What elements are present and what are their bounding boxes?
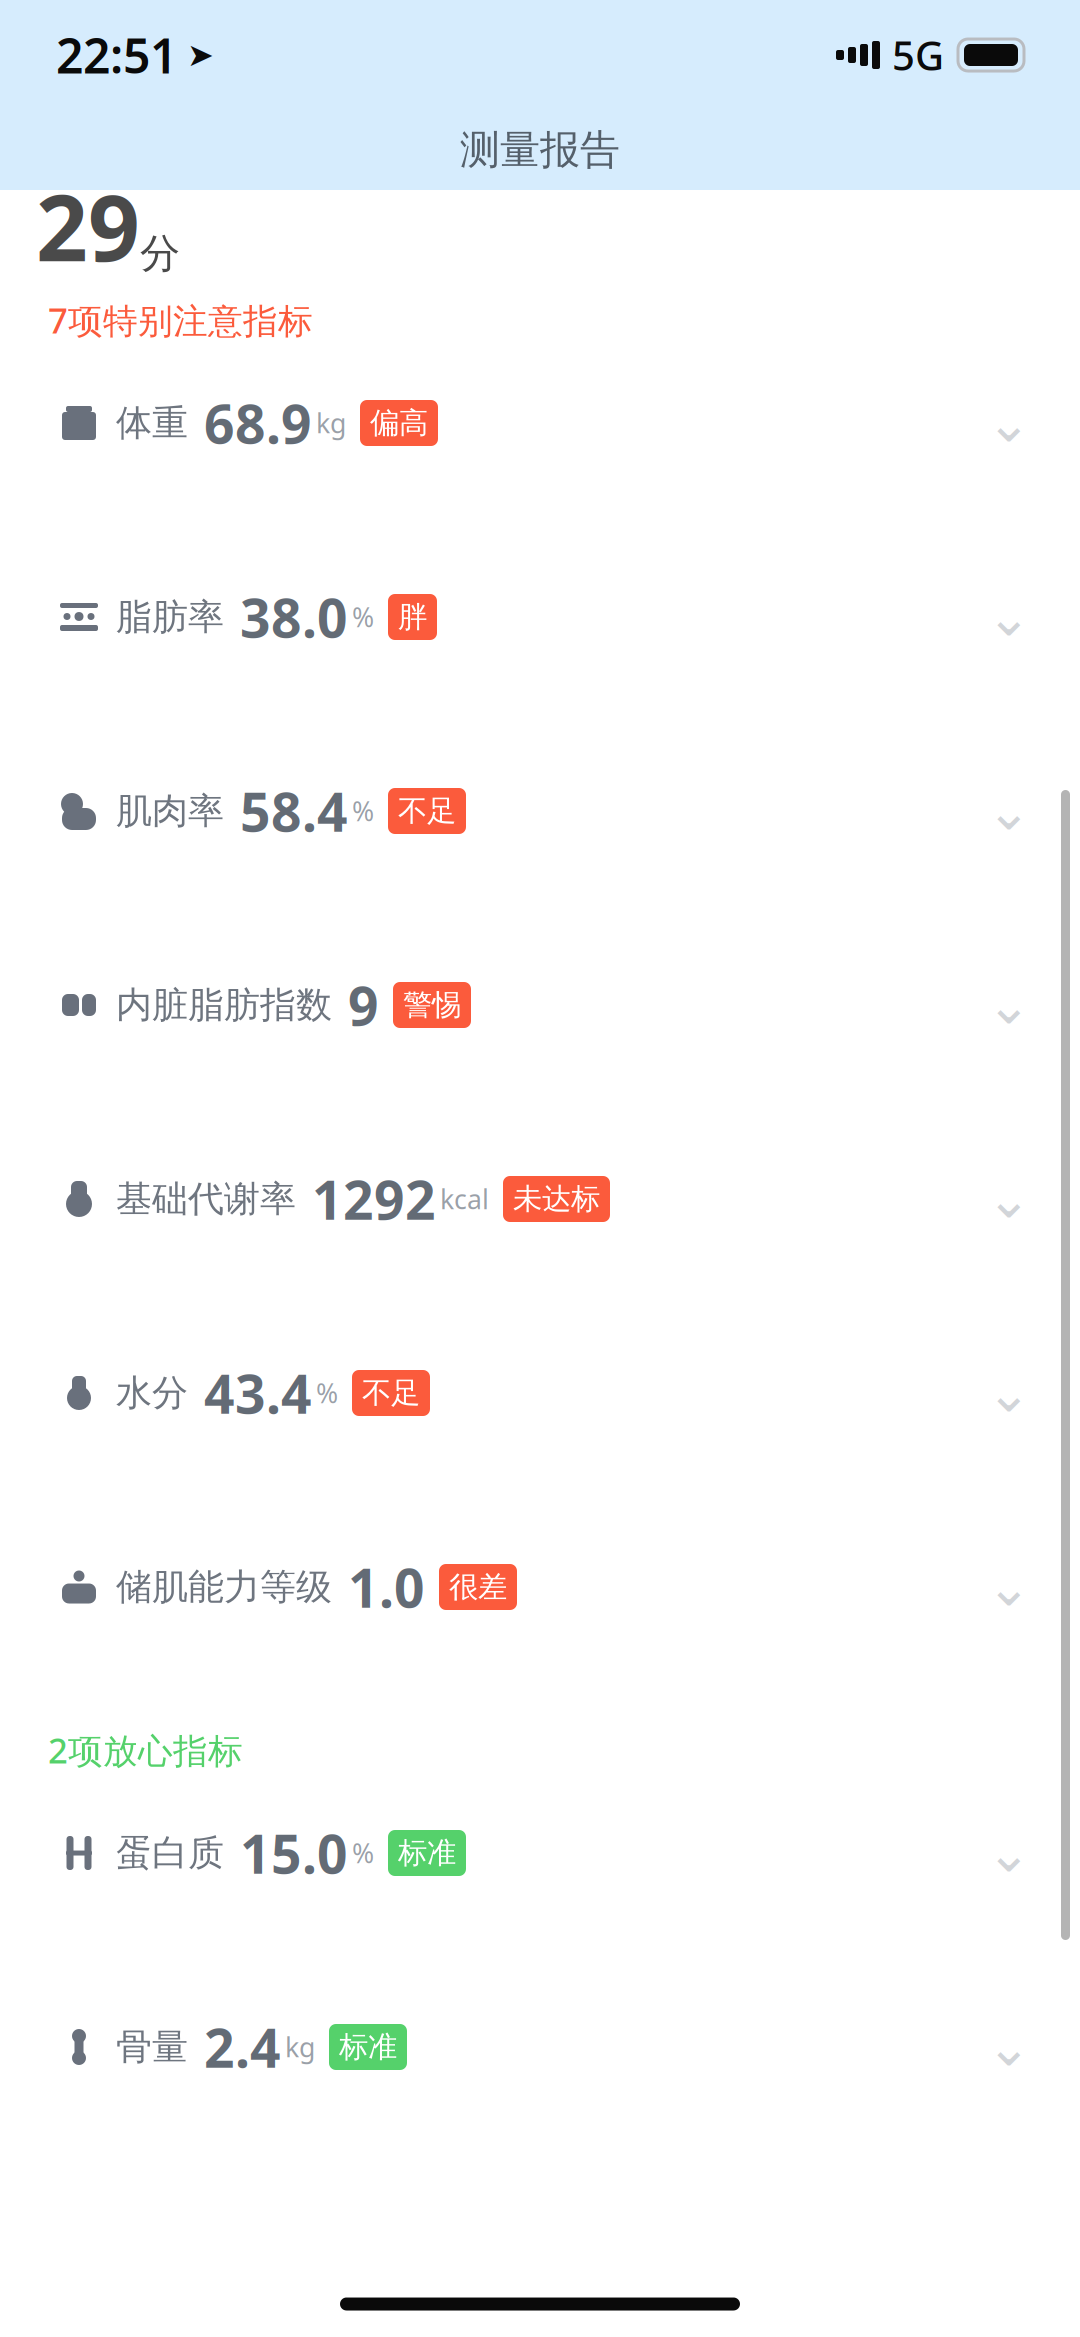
button[interactable]: 蛋白质: [0, 1798, 1080, 1908]
staticText: 很差: [449, 1569, 507, 1605]
staticText: 15.0: [240, 1818, 348, 1888]
button[interactable]: 肌肉率: [0, 756, 1080, 866]
staticText: 不足: [362, 1375, 420, 1411]
staticText: 基础代谢率: [116, 1177, 296, 1221]
staticText: 测量报告: [460, 125, 620, 174]
staticText: ⌄: [986, 1363, 1031, 1423]
button[interactable]: 内脏脂肪指数: [0, 950, 1080, 1060]
staticText: 2.4: [204, 2012, 281, 2082]
staticText: 7项特别注意指标: [48, 297, 313, 343]
staticText: 29: [36, 166, 140, 286]
staticText: ⌄: [986, 2017, 1031, 2077]
staticText: 22:51: [56, 23, 177, 87]
staticText: kg: [316, 405, 346, 441]
staticText: ⌄: [986, 975, 1031, 1035]
staticText: 38.0: [240, 582, 348, 652]
staticText: 分: [140, 229, 180, 278]
staticText: 偏高: [370, 405, 428, 441]
staticText: ⌄: [986, 1823, 1031, 1883]
staticText: 1292: [312, 1164, 436, 1234]
staticText: 43.4: [204, 1358, 312, 1428]
staticText: 2项放心指标: [48, 1727, 243, 1773]
staticText: 未达标: [513, 1181, 600, 1217]
staticText: ⌄: [986, 1557, 1031, 1617]
button[interactable]: 脂肪率: [0, 562, 1080, 672]
staticText: 体重: [116, 401, 188, 445]
staticText: 58.4: [240, 776, 348, 846]
staticText: kg: [285, 2029, 315, 2065]
staticText: 警惕: [403, 987, 461, 1023]
staticText: ➤: [187, 37, 214, 73]
staticText: %: [352, 793, 374, 829]
staticText: 水分: [116, 1371, 188, 1415]
button[interactable]: 水分: [0, 1338, 1080, 1448]
staticText: %: [352, 1835, 374, 1871]
staticText: ⌄: [986, 781, 1031, 841]
staticText: %: [352, 599, 374, 635]
staticText: 内脏脂肪指数: [116, 983, 332, 1027]
staticText: 蛋白质: [116, 1831, 224, 1875]
staticText: ⌄: [986, 393, 1031, 453]
staticText: 肌肉率: [116, 789, 224, 833]
staticText: %: [316, 1375, 338, 1411]
staticText: ⌄: [986, 587, 1031, 647]
staticText: 9: [348, 970, 379, 1040]
staticText: kcal: [440, 1181, 489, 1217]
staticText: 68.9: [204, 388, 312, 458]
staticText: ⌄: [986, 1169, 1031, 1229]
staticText: 标准: [339, 2029, 397, 2065]
staticText: 储肌能力等级: [116, 1565, 332, 1609]
button[interactable]: 体重: [0, 368, 1080, 478]
staticText: 脂肪率: [116, 595, 224, 639]
staticText: 标准: [398, 1835, 456, 1871]
staticText: 骨量: [116, 2025, 188, 2069]
button[interactable]: 基础代谢率: [0, 1144, 1080, 1254]
staticText: 胖: [398, 599, 427, 635]
staticText: 不足: [398, 793, 456, 829]
button[interactable]: 骨量: [0, 1992, 1080, 2102]
button[interactable]: 储肌能力等级: [0, 1532, 1080, 1642]
staticText: 5G: [892, 28, 944, 81]
staticText: 1.0: [348, 1552, 425, 1622]
